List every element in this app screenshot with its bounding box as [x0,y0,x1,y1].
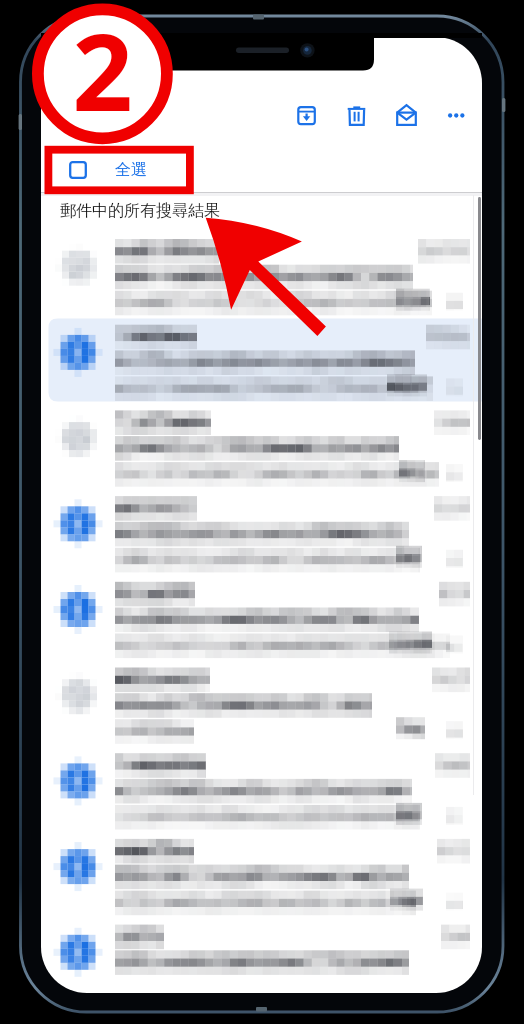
staticText: 全選 [115,160,147,180]
staticText: 郵件中的所有搜尋結果 [60,201,220,221]
button[interactable]: Mark as unread [381,94,431,136]
button[interactable]: 全選 [41,147,482,192]
staticText: 2 [72,0,133,138]
button[interactable]: More options [431,94,481,136]
button[interactable]: Archive [281,94,331,136]
button[interactable]: Delete [331,94,381,136]
